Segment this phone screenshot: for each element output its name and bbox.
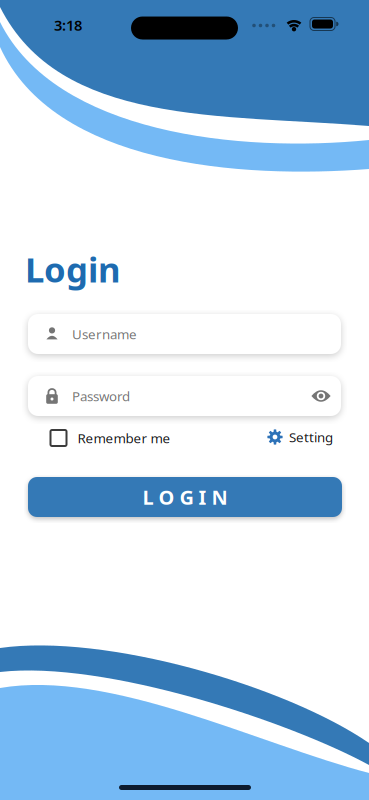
button[interactable]: Username [28, 314, 341, 354]
button[interactable]: Remember me [49, 429, 170, 447]
staticText: Username [72, 325, 137, 343]
staticText: Password [72, 387, 130, 405]
button[interactable]: Password [28, 376, 341, 416]
staticText: Setting [289, 428, 333, 446]
staticText: 3:18 [54, 15, 82, 35]
button[interactable]: L O G I N [28, 477, 342, 517]
staticText: Remember me [77, 429, 170, 447]
button[interactable]: Setting [267, 428, 333, 446]
staticText: L O G I N [142, 484, 227, 510]
button[interactable]: Show password [311, 389, 331, 403]
staticText: Login [25, 246, 121, 292]
